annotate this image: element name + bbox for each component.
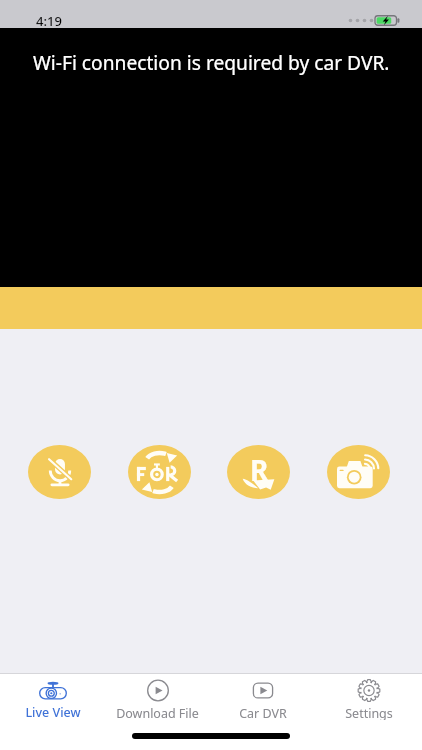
button[interactable]: Switch front rear camera [128, 445, 191, 499]
button[interactable]: Start recording [227, 445, 290, 499]
button[interactable]: Car DVR [210, 674, 316, 720]
button[interactable]: Settings [316, 674, 422, 720]
button[interactable]: Mute microphone [28, 445, 91, 499]
staticText: 4:19 [36, 12, 62, 28]
staticText: Settings [345, 705, 393, 720]
button[interactable]: Live View [0, 674, 105, 720]
staticText: R [250, 451, 269, 487]
staticText: Download File [116, 705, 199, 720]
staticText: Live View [25, 704, 81, 720]
button[interactable]: Download File [105, 674, 210, 720]
button[interactable]: Take photo [327, 445, 390, 499]
staticText: Wi-Fi connection is required by car DVR. [33, 49, 390, 75]
staticText: Car DVR [239, 705, 287, 720]
